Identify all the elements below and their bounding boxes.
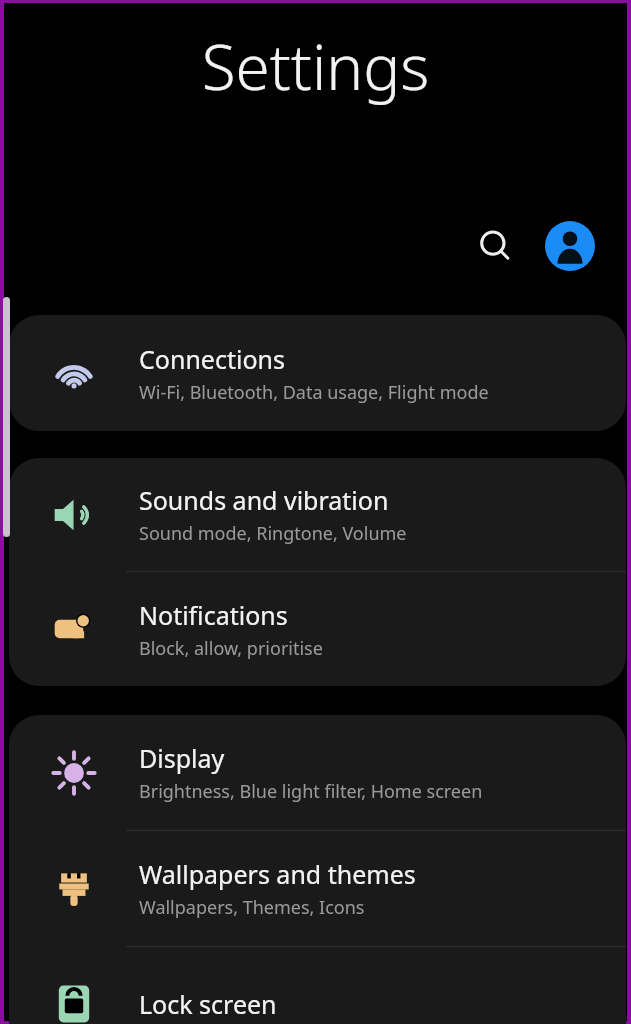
staticText: Sounds and vibration [139, 483, 389, 517]
staticText: Display [139, 741, 225, 775]
staticText: Connections [139, 342, 285, 376]
staticText: Settings [4, 24, 627, 108]
staticText: Sound mode, Ringtone, Volume [139, 521, 407, 546]
staticText: Brightness, Blue light filter, Home scre… [139, 779, 483, 804]
staticText: Wallpapers, Themes, Icons [139, 895, 365, 920]
staticText: Notifications [139, 598, 288, 632]
staticText: Wi-Fi, Bluetooth, Data usage, Flight mod… [139, 380, 489, 405]
staticText: Lock screen [139, 987, 277, 1021]
button[interactable]: Account [542, 218, 598, 274]
staticText: Block, allow, prioritise [139, 636, 323, 661]
button[interactable]: Wallpapers and themes [9, 831, 626, 946]
button[interactable]: Lock screen [9, 947, 626, 1024]
button[interactable]: Connections [9, 315, 626, 431]
button[interactable]: Search [467, 218, 523, 274]
button[interactable]: Notifications [9, 572, 626, 686]
staticText: Wallpapers and themes [139, 857, 416, 891]
button[interactable]: Display [9, 715, 626, 830]
button[interactable]: Sounds and vibration [9, 458, 626, 571]
